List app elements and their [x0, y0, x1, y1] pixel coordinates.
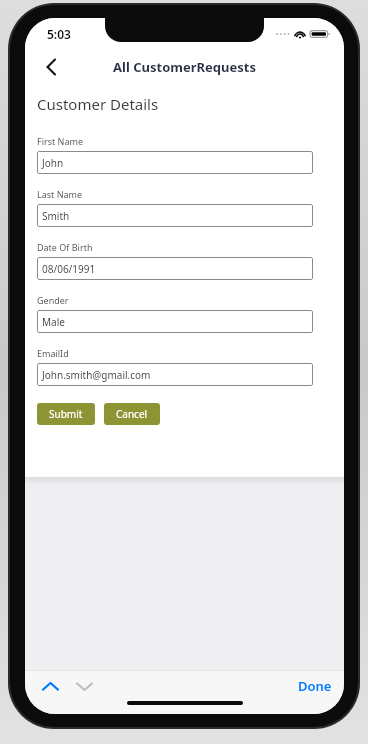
button[interactable]: Done [286, 673, 344, 699]
button[interactable]: John.smith@gmail.com [37, 363, 313, 386]
staticText: First Name [37, 135, 83, 147]
staticText: Date Of Birth [37, 241, 93, 253]
staticText: All CustomerRequests [25, 58, 344, 76]
staticText: Customer Details [37, 94, 159, 114]
staticText: Done [298, 677, 332, 695]
button[interactable]: John [37, 151, 313, 174]
staticText: 5:03 [47, 26, 71, 42]
button[interactable]: Back [35, 51, 67, 83]
staticText: Male [42, 315, 65, 329]
staticText: John.smith@gmail.com [42, 368, 151, 382]
button[interactable]: 08/06/1991 [37, 257, 313, 280]
staticText: 08/06/1991 [42, 262, 96, 276]
staticText: EmailId [37, 347, 69, 359]
button[interactable]: Smith [37, 204, 313, 227]
staticText: Cancel [116, 407, 148, 421]
staticText: Smith [42, 209, 70, 223]
button[interactable]: Previous field [37, 674, 63, 698]
button[interactable]: Next field [71, 674, 97, 698]
staticText: Submit [49, 407, 83, 421]
staticText: John [42, 156, 64, 170]
button[interactable]: Cancel [104, 403, 160, 425]
staticText: Gender [37, 294, 69, 306]
button[interactable]: Submit [37, 403, 95, 425]
staticText: Last Name [37, 188, 83, 200]
button[interactable]: Male [37, 310, 313, 333]
